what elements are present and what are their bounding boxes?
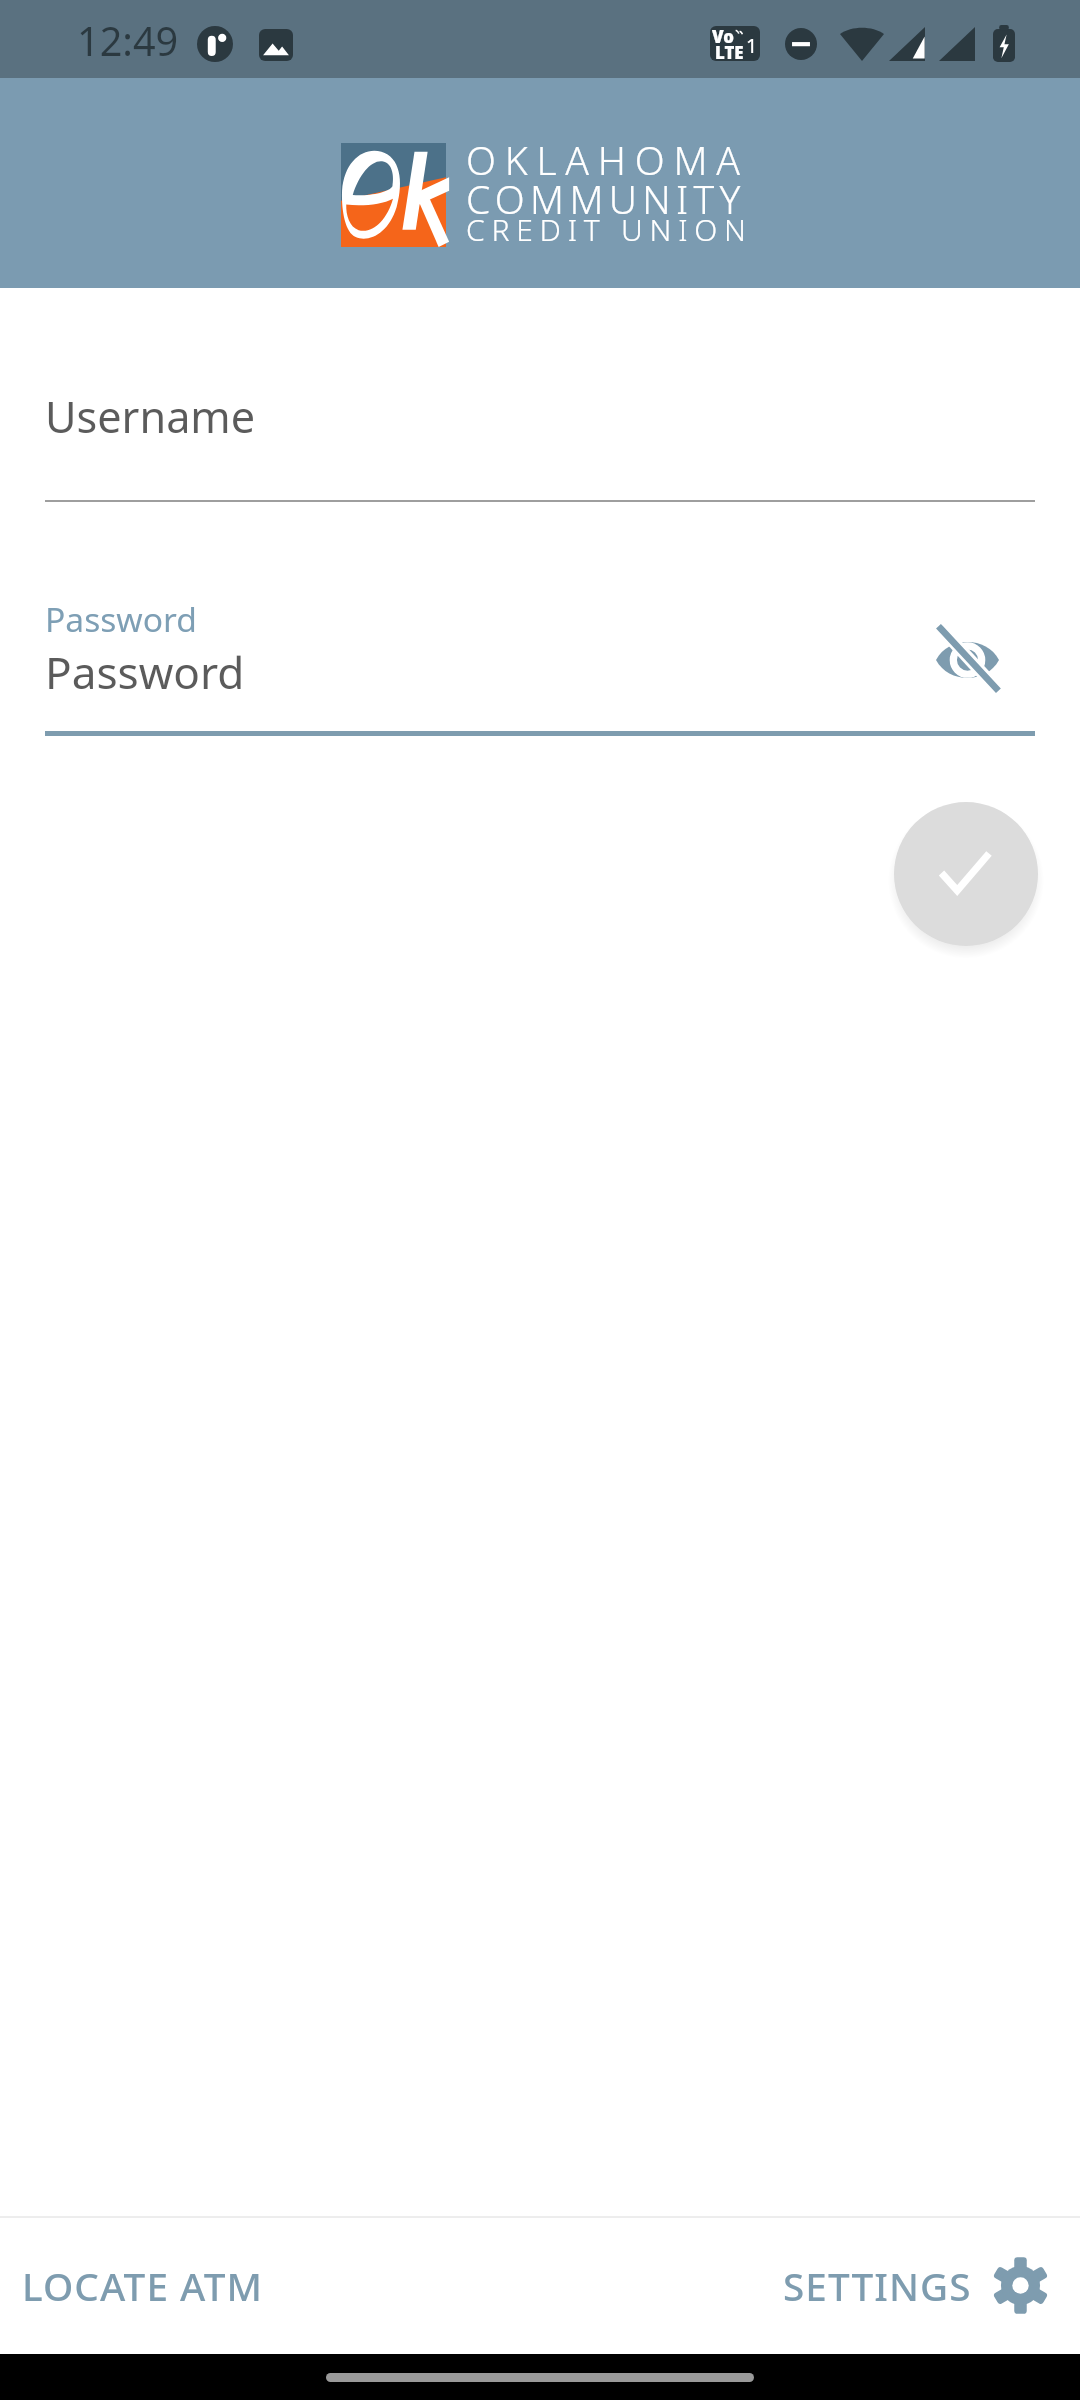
staticText: Password bbox=[45, 642, 245, 702]
button[interactable]: Username bbox=[0, 372, 1080, 520]
staticText: Password bbox=[45, 596, 197, 642]
button[interactable]: Password bbox=[0, 588, 1080, 732]
staticText: SETTINGS bbox=[783, 2260, 972, 2313]
button[interactable]: LOCATE ATM bbox=[0, 2218, 286, 2354]
button[interactable]: Show password bbox=[895, 586, 1039, 730]
button[interactable]: SETTINGS bbox=[759, 2218, 1060, 2354]
staticText: 1 bbox=[746, 32, 758, 59]
staticText: LTE bbox=[715, 41, 744, 61]
staticText: CREDIT UNION bbox=[466, 209, 753, 250]
staticText: OKLAHOMA bbox=[466, 133, 749, 186]
staticText: COMMUNITY bbox=[466, 172, 746, 225]
staticText: 12:49 bbox=[77, 14, 179, 68]
staticText: Username bbox=[45, 387, 256, 446]
button[interactable]: Sign in bbox=[894, 802, 1038, 946]
staticText: LOCATE ATM bbox=[22, 2260, 264, 2313]
staticText: Vo bbox=[712, 26, 735, 48]
